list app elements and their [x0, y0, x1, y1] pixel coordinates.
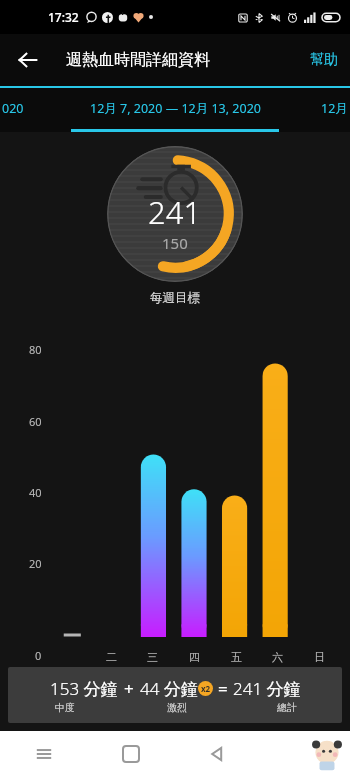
button[interactable]: 幫助 — [298, 43, 350, 77]
staticText: 17:32 — [48, 9, 79, 25]
staticText: 六 — [272, 650, 283, 664]
staticText: 40 — [29, 485, 42, 500]
button[interactable]: Recent apps — [0, 731, 87, 777]
staticText: 12月 7, 2020 — 12月 13, 2020 — [90, 100, 261, 117]
staticText: 20 — [29, 556, 42, 571]
staticText: 幫助 — [310, 51, 338, 69]
staticText: = — [218, 677, 228, 700]
staticText: 每週目標 — [150, 290, 200, 306]
staticText: 020 — [2, 100, 24, 117]
staticText: 總計 — [277, 701, 297, 714]
staticText: 週熱血時間詳細資料 — [66, 50, 210, 70]
button[interactable]: Back — [174, 731, 262, 777]
staticText: 60 — [29, 414, 42, 429]
staticText: 241 — [148, 191, 202, 233]
button[interactable]: 153 分鐘 — [8, 667, 342, 723]
staticText: 80 — [29, 342, 42, 357]
staticText: x2 — [201, 683, 211, 694]
staticText: 0 — [35, 648, 42, 663]
staticText: 12月 — [321, 100, 348, 117]
staticText: 241 分鐘 — [233, 677, 301, 700]
staticText: 150 — [162, 233, 188, 253]
staticText: 三 — [147, 650, 158, 664]
staticText: 激烈 — [167, 701, 187, 714]
staticText: 153 分鐘 — [50, 677, 118, 700]
button[interactable]: Home — [87, 731, 174, 777]
button[interactable]: 241 — [107, 146, 243, 282]
staticText: 日 — [314, 650, 325, 664]
staticText: + — [124, 677, 134, 700]
button[interactable]: Back — [8, 40, 48, 80]
staticText: 五 — [231, 650, 242, 664]
staticText: 四 — [189, 650, 200, 664]
staticText: 44 分鐘 — [140, 677, 198, 700]
button[interactable]: 12月 7, 2020 — 12月 13, 2020 — [82, 94, 269, 123]
staticText: 中度 — [55, 701, 75, 714]
staticText: 二 — [106, 650, 117, 664]
